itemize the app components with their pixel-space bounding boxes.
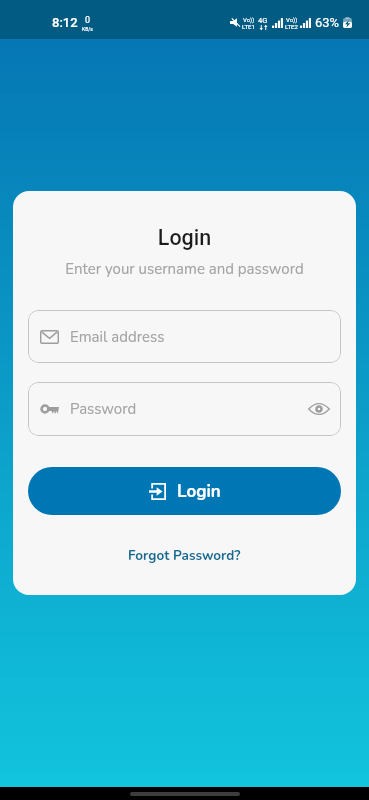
staticText: 8:12 [52, 15, 78, 30]
button[interactable]: Show password [306, 396, 332, 422]
staticText: Enter your username and password [13, 259, 356, 279]
staticText: Login [177, 480, 221, 503]
staticText: 4G [258, 16, 268, 25]
button[interactable]: Login [28, 467, 341, 515]
button[interactable]: Forgot Password? [120, 543, 249, 567]
button[interactable]: Password [28, 382, 341, 436]
staticText: Email address [70, 327, 165, 347]
staticText: LTE1 [242, 23, 255, 30]
staticText: Login [13, 225, 356, 250]
staticText: KB/s [82, 26, 93, 32]
staticText: Password [70, 399, 306, 419]
staticText: 63% [315, 15, 340, 30]
button[interactable]: Email address [28, 310, 341, 363]
staticText: LTE2 [285, 23, 298, 30]
staticText: Vo)) [286, 16, 298, 23]
staticText: Vo)) [243, 16, 255, 23]
staticText: 0 [85, 15, 91, 26]
